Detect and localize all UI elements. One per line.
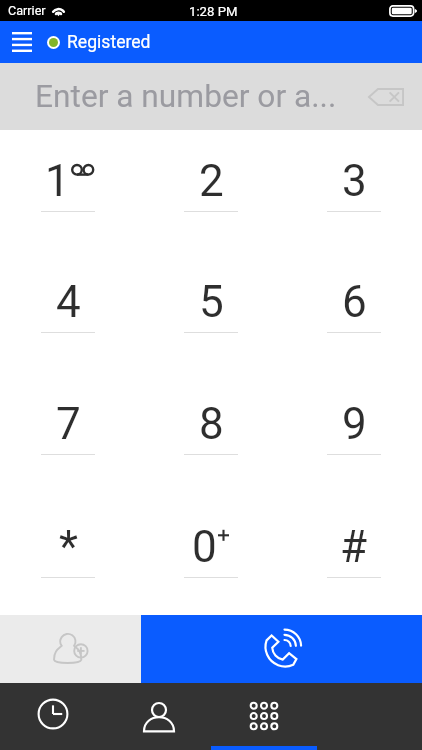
staticText: 1:28 PM [189, 4, 238, 19]
staticText: Enter a number or a... [35, 78, 337, 115]
button[interactable] [283, 474, 422, 597]
button[interactable]: Menu [0, 21, 43, 63]
button[interactable]: Add contact [0, 615, 141, 683]
staticText: Registered [67, 32, 151, 53]
staticText: 0 [192, 521, 217, 573]
staticText: 4 [56, 276, 81, 328]
button[interactable] [0, 474, 139, 597]
staticText: 8 [199, 398, 224, 450]
staticText: Carrier [8, 3, 46, 18]
staticText: 9 [342, 398, 367, 450]
staticText: 2 [199, 155, 224, 207]
button[interactable] [283, 231, 422, 352]
staticText: 6 [342, 276, 367, 328]
button[interactable]: Contacts [106, 683, 212, 750]
staticText: 1 [45, 155, 70, 207]
staticText: # [340, 521, 368, 573]
staticText: 7 [56, 398, 81, 450]
button[interactable] [283, 130, 422, 231]
button[interactable] [140, 352, 283, 474]
button[interactable]: Backspace [358, 63, 422, 130]
button[interactable]: Dialpad [211, 683, 317, 750]
staticText: 3 [342, 155, 367, 207]
button[interactable]: Recents [0, 683, 106, 750]
staticText: 5 [199, 276, 224, 328]
button[interactable] [283, 352, 422, 474]
button[interactable] [140, 130, 283, 231]
button[interactable] [140, 231, 283, 352]
button[interactable]: Registered [47, 21, 151, 63]
button[interactable] [0, 130, 139, 231]
button[interactable] [0, 231, 139, 352]
button[interactable]: Call [141, 615, 422, 683]
staticText: * [59, 521, 78, 573]
button[interactable] [0, 352, 139, 474]
button[interactable] [140, 474, 283, 597]
